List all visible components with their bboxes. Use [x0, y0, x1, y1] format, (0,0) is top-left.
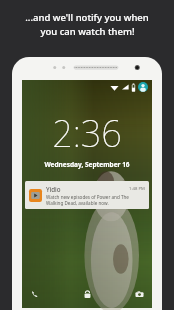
- button[interactable]: Yidio: [25, 181, 149, 209]
- staticText: 1:48 PM: [129, 186, 145, 192]
- staticText: you can watch them!: [40, 25, 135, 38]
- staticText: Walking Dead, available now.: [46, 200, 109, 206]
- staticText: Wednesday, September 16: [44, 160, 130, 169]
- staticText: Watch new episodes of Power and The: [46, 194, 129, 200]
- staticText: 2:36: [52, 109, 122, 158]
- button[interactable]: Camera: [132, 287, 146, 301]
- button[interactable]: Unlock: [80, 287, 94, 301]
- staticText: ...and we'll notify you when: [25, 11, 149, 24]
- staticText: Yidio: [46, 185, 61, 193]
- button[interactable]: Phone: [28, 287, 42, 301]
